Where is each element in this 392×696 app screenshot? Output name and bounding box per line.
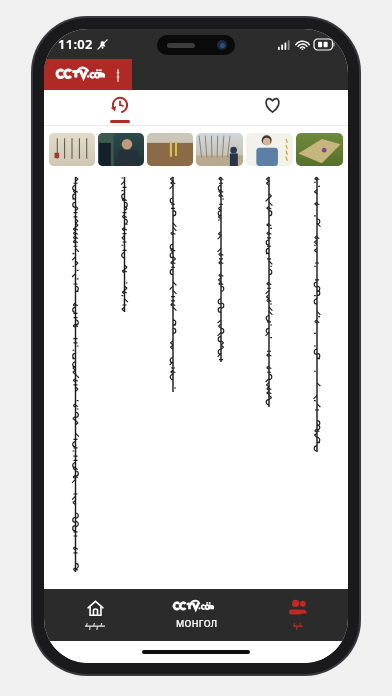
button[interactable] bbox=[247, 589, 348, 641]
staticText: 11:02 bbox=[58, 35, 93, 53]
button[interactable] bbox=[44, 589, 146, 641]
button[interactable]: Article bbox=[197, 175, 245, 589]
button[interactable]: Article thumbnail bbox=[296, 133, 343, 166]
button[interactable]: Favorites bbox=[196, 90, 348, 126]
button[interactable]: Article thumbnail bbox=[246, 133, 293, 166]
button[interactable]: Article bbox=[149, 175, 197, 589]
button[interactable]: Article thumbnail bbox=[98, 133, 144, 166]
button[interactable]: Article bbox=[293, 175, 341, 589]
button[interactable]: МОНГОЛ bbox=[146, 589, 247, 641]
staticText: МОНГОЛ bbox=[176, 617, 218, 629]
button[interactable]: History bbox=[44, 90, 196, 126]
button[interactable]: Article bbox=[51, 175, 100, 589]
button[interactable]: Article bbox=[245, 175, 293, 589]
button[interactable]: Article thumbnail bbox=[49, 133, 95, 166]
button[interactable]: Article thumbnail bbox=[196, 133, 243, 166]
button[interactable]: Article bbox=[100, 175, 149, 589]
button[interactable]: Article thumbnail bbox=[147, 133, 193, 166]
button[interactable]: CCTV.com bbox=[44, 59, 132, 90]
